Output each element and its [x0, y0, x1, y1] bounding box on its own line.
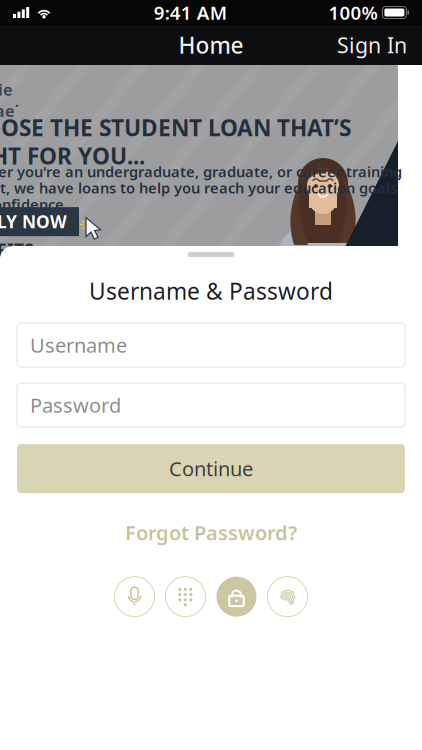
staticText: sallie — [0, 79, 13, 100]
staticText: RIGHT FOR YOU... — [0, 141, 145, 171]
staticText: Whether you're an undergraduate, graduat… — [0, 162, 402, 181]
button[interactable]: Sign In — [322, 22, 422, 68]
staticText: CHOOSE THE STUDENT LOAN THAT’S — [0, 112, 351, 143]
staticText: student, we have loans to help you reach… — [0, 178, 397, 198]
button[interactable]: Username and password — [216, 577, 256, 617]
button[interactable]: Forgot Password? — [125, 514, 297, 551]
staticText: mae˙ — [0, 100, 19, 121]
staticText: Home — [178, 30, 243, 60]
staticText: with confidence. — [0, 195, 68, 214]
staticText: Username — [30, 332, 127, 358]
staticText: Sign In — [337, 31, 407, 59]
staticText: 100% — [328, 0, 377, 25]
staticText: Username & Password — [89, 276, 333, 306]
staticText: 9:41 AM — [154, 0, 227, 25]
staticText: Forgot Password? — [125, 519, 297, 546]
staticText: Continue — [169, 455, 253, 482]
button[interactable]: Passcode — [165, 577, 205, 617]
button[interactable]: Continue — [17, 444, 405, 493]
button[interactable]: Voice sign in — [114, 577, 154, 617]
button[interactable]: Touch ID — [267, 577, 307, 617]
staticText: APPLY NOW — [0, 210, 67, 233]
staticText: Password — [30, 392, 121, 418]
staticText: BENEFITS: — [0, 238, 39, 261]
